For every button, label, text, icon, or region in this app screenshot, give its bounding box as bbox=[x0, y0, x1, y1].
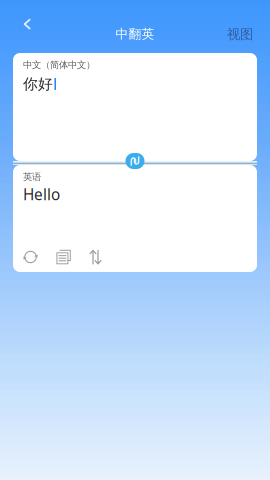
staticText: 英语 bbox=[23, 171, 41, 183]
button[interactable]: 视图 bbox=[220, 24, 270, 45]
staticText: Hello bbox=[23, 184, 60, 205]
button[interactable]: Back bbox=[15, 17, 39, 31]
button[interactable]: Retranslate bbox=[23, 247, 56, 267]
staticText: 中翻英 bbox=[115, 26, 154, 42]
button[interactable]: Swap languages bbox=[125, 152, 145, 170]
staticText: 你好 bbox=[23, 75, 53, 93]
button[interactable]: Copy bbox=[56, 247, 89, 267]
staticText: 中文（简体中文） bbox=[23, 59, 95, 71]
staticText: 视图 bbox=[227, 26, 253, 43]
button[interactable]: Swap direction bbox=[89, 247, 117, 267]
